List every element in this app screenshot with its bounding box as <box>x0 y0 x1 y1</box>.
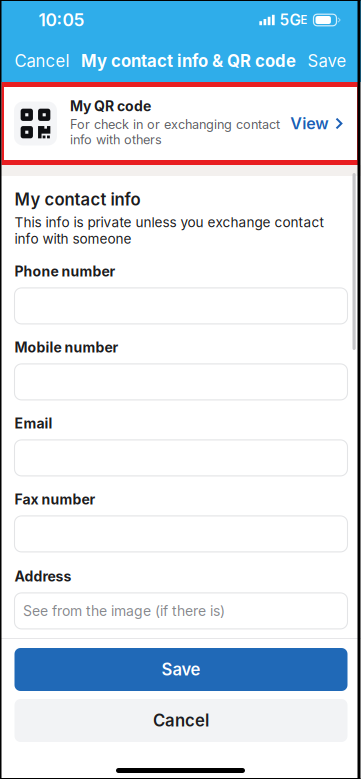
staticText: Email <box>14 415 52 432</box>
button[interactable] <box>14 288 347 324</box>
staticText: My contact info & QR code <box>81 51 296 71</box>
staticText: View <box>290 114 328 133</box>
staticText: Save <box>307 51 346 71</box>
staticText: Cancel <box>153 710 209 731</box>
staticText: My contact info <box>14 189 140 210</box>
button[interactable]: Cancel <box>14 699 347 742</box>
staticText: 5G <box>279 11 300 29</box>
staticText: 10:05 <box>38 9 84 30</box>
staticText: Save <box>161 659 200 680</box>
button[interactable] <box>14 516 347 552</box>
button[interactable]: Save <box>14 648 347 691</box>
button[interactable]: Cancel <box>5 40 78 82</box>
staticText: This info is private unless you exchange… <box>14 214 323 247</box>
staticText: E <box>300 13 307 27</box>
staticText: Mobile number <box>14 339 118 356</box>
button[interactable] <box>14 440 347 476</box>
staticText: For check in or exchanging contact info … <box>70 117 280 147</box>
button[interactable]: See from the image (if there is) <box>14 593 347 629</box>
staticText: Cancel <box>14 51 69 71</box>
staticText: Address <box>14 568 71 585</box>
button[interactable] <box>14 364 347 400</box>
staticText: See from the image (if there is) <box>23 602 225 619</box>
button[interactable]: Save <box>298 40 355 82</box>
staticText: My QR code <box>70 98 151 115</box>
staticText: Phone number <box>14 263 115 280</box>
staticText: Fax number <box>14 491 95 508</box>
button[interactable]: My QR code <box>0 82 361 165</box>
